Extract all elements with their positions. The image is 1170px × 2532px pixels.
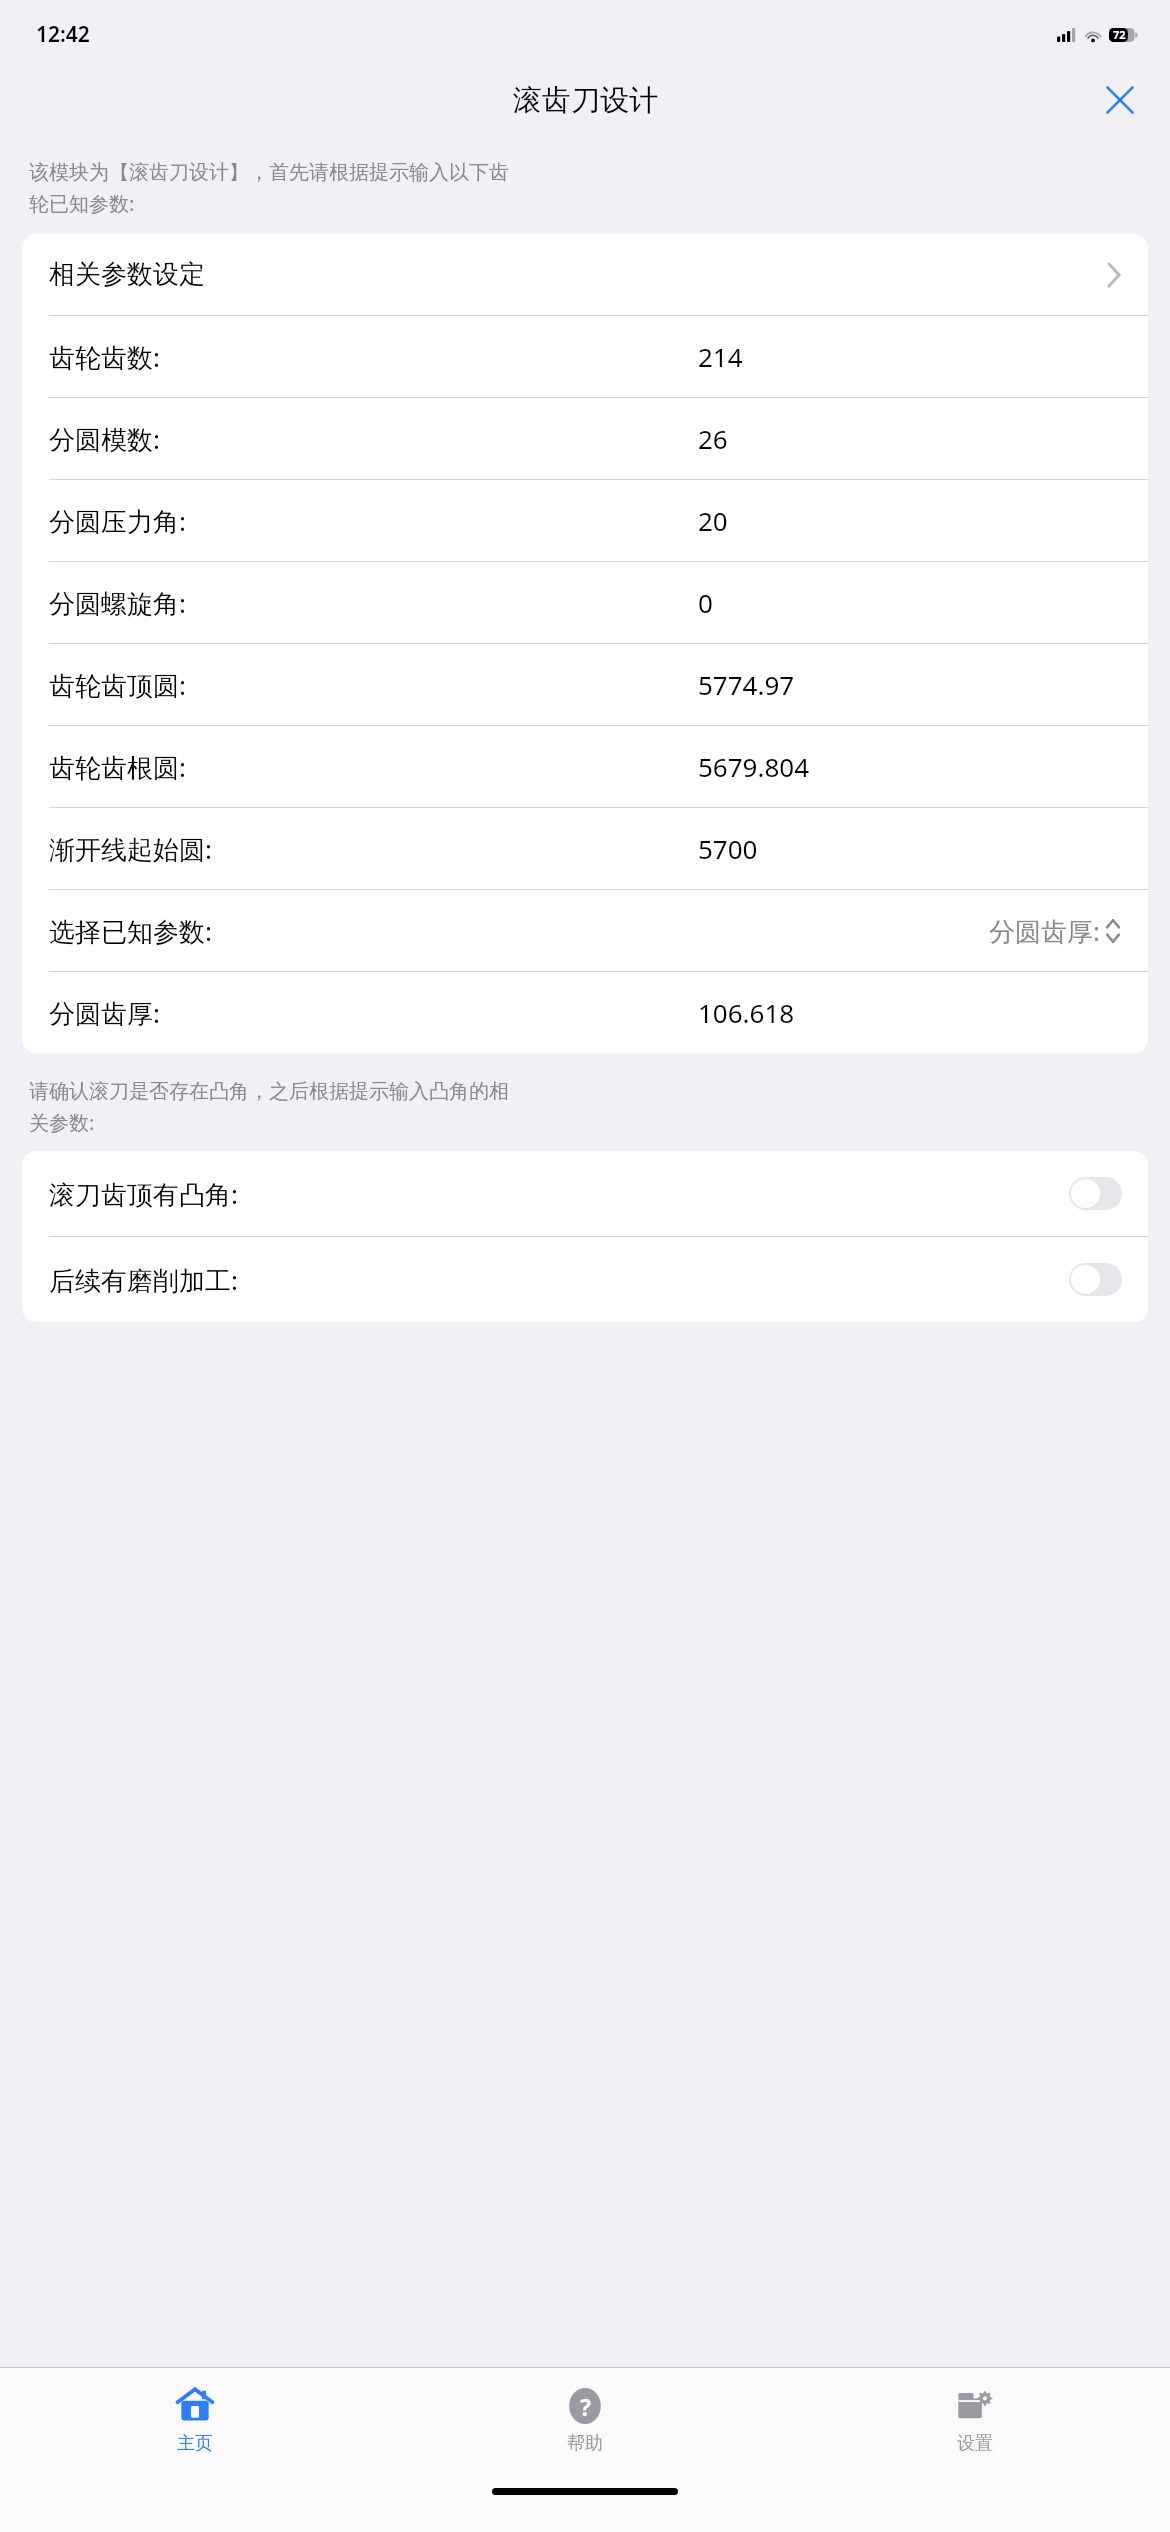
staticText: 分圆齿厚:: [989, 913, 1100, 949]
staticText: 选择已知参数:: [49, 913, 212, 949]
staticText: 渐开线起始圆:: [49, 831, 212, 867]
button[interactable]: 分圆模数:: [22, 398, 1148, 479]
staticText: 72: [1113, 27, 1126, 42]
staticText: 5774.97: [698, 667, 795, 702]
button[interactable]: 后续有磨削加工:: [1069, 1263, 1122, 1296]
staticText: 分圆压力角:: [49, 503, 186, 539]
staticText: 26: [698, 421, 728, 456]
button[interactable]: 渐开线起始圆:: [22, 808, 1148, 889]
staticText: 主页: [177, 2432, 213, 2455]
staticText: 请确认滚刀是否存在凸角，之后根据提示输入凸角的相 关参数:: [29, 1079, 1141, 1135]
staticText: 12:42: [36, 20, 90, 49]
staticText: 齿轮齿根圆:: [49, 749, 186, 785]
button[interactable]: 分圆螺旋角:: [22, 562, 1148, 643]
staticText: 后续有磨削加工:: [49, 1262, 238, 1298]
staticText: 5679.804: [698, 749, 810, 784]
staticText: 106.618: [698, 995, 795, 1030]
staticText: 214: [698, 339, 743, 374]
staticText: 分圆螺旋角:: [49, 585, 186, 621]
button[interactable]: 分圆齿厚:: [22, 972, 1148, 1053]
staticText: 该模块为【滚齿刀设计】，首先请根据提示输入以下齿 轮已知参数:: [29, 160, 1141, 216]
staticText: ?: [580, 2391, 591, 2422]
staticText: 滚齿刀设计: [513, 82, 658, 119]
staticText: 齿轮齿顶圆:: [49, 667, 186, 703]
button[interactable]: 齿轮齿数:: [22, 316, 1148, 397]
button[interactable]: 相关参数设定: [22, 234, 1148, 315]
button[interactable]: 设置: [780, 2368, 1170, 2472]
button[interactable]: 选择已知参数:: [22, 890, 1148, 971]
staticText: 帮助: [567, 2432, 603, 2455]
button[interactable]: ?: [390, 2368, 780, 2472]
staticText: 20: [698, 503, 728, 538]
button[interactable]: 分圆压力角:: [22, 480, 1148, 561]
staticText: 滚刀齿顶有凸角:: [49, 1176, 238, 1212]
button[interactable]: 滚刀齿顶有凸角:: [1069, 1177, 1122, 1210]
button[interactable]: 齿轮齿根圆:: [22, 726, 1148, 807]
staticText: 分圆模数:: [49, 421, 160, 457]
button[interactable]: 主页: [0, 2368, 390, 2472]
button[interactable]: 齿轮齿顶圆:: [22, 644, 1148, 725]
staticText: 设置: [957, 2432, 993, 2455]
staticText: 相关参数设定: [49, 258, 205, 291]
staticText: 0: [698, 585, 713, 620]
staticText: 5700: [698, 831, 758, 866]
staticText: 齿轮齿数:: [49, 339, 160, 375]
button[interactable]: Close: [1092, 72, 1148, 128]
staticText: 分圆齿厚:: [49, 995, 160, 1031]
